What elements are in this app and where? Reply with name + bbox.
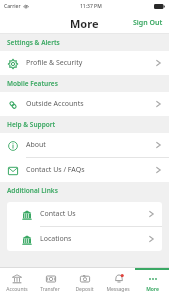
button[interactable]: Accounts	[0, 268, 33, 300]
button[interactable]: Contact Us	[7, 202, 162, 226]
button[interactable]: About	[0, 133, 169, 157]
staticText: More	[146, 286, 159, 293]
staticText: Sign Out	[133, 18, 163, 28]
staticText: Deposit	[75, 286, 94, 293]
staticText: Carrier	[4, 3, 21, 10]
staticText: Transfer	[40, 286, 60, 293]
staticText: Profile & Security	[26, 58, 83, 68]
staticText: Additional Links	[7, 186, 58, 195]
staticText: Locations	[40, 234, 72, 244]
staticText: More	[70, 16, 99, 31]
staticText: Help & Support	[7, 120, 56, 129]
button[interactable]: Profile & Security	[0, 51, 169, 75]
staticText: Accounts	[6, 286, 28, 293]
button[interactable]: More	[135, 268, 169, 300]
staticText: Outside Accounts	[26, 99, 84, 109]
staticText: About	[26, 140, 46, 150]
button[interactable]: Contact Us / FAQs	[0, 158, 169, 182]
button[interactable]: Sign Out	[131, 16, 165, 30]
staticText: Messages	[106, 286, 130, 293]
button[interactable]: Outside Accounts	[0, 92, 169, 116]
staticText: Contact Us	[40, 209, 76, 219]
button[interactable]: Locations	[7, 227, 162, 251]
button[interactable]: Messages	[101, 268, 135, 300]
staticText: 11:37 PM	[80, 3, 102, 10]
staticText: Mobile Features	[7, 79, 58, 88]
button[interactable]: Deposit	[67, 268, 101, 300]
staticText: Contact Us / FAQs	[26, 165, 85, 175]
button[interactable]: Transfer	[33, 268, 67, 300]
staticText: Settings & Alerts	[7, 38, 60, 47]
